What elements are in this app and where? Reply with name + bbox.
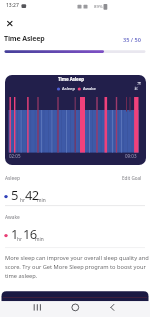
- button[interactable]: [27, 301, 48, 317]
- staticText: More sleep can improve your overall slee…: [5, 254, 149, 280]
- staticText: min: [37, 197, 46, 204]
- staticText: 1: [11, 225, 19, 243]
- staticText: Asleep: [62, 86, 76, 92]
- staticText: 5: [11, 186, 19, 204]
- staticText: hr: [20, 197, 25, 204]
- staticText: Asleep: [5, 175, 20, 182]
- button[interactable]: [3, 17, 16, 30]
- button[interactable]: [131, 78, 144, 93]
- button[interactable]: [102, 301, 123, 317]
- staticText: hr: [17, 236, 22, 243]
- staticText: Edit Goal: [122, 175, 142, 181]
- staticText: 02:05: [9, 153, 21, 159]
- staticText: min: [35, 236, 44, 243]
- staticText: 42: [25, 186, 39, 204]
- staticText: Time Asleep: [4, 34, 45, 44]
- button[interactable]: Edit Goal: [118, 173, 148, 184]
- staticText: 13:27: [6, 2, 19, 9]
- staticText: Time Asleep: [58, 76, 85, 82]
- staticText: 35 / 50: [123, 36, 141, 44]
- staticText: Awake: [5, 214, 20, 221]
- staticText: 09:03: [125, 153, 137, 159]
- staticText: 16: [23, 225, 37, 243]
- staticText: Awake: [83, 86, 96, 92]
- staticText: 89%: [94, 3, 103, 9]
- button[interactable]: [5, 75, 146, 165]
- button[interactable]: [65, 301, 86, 317]
